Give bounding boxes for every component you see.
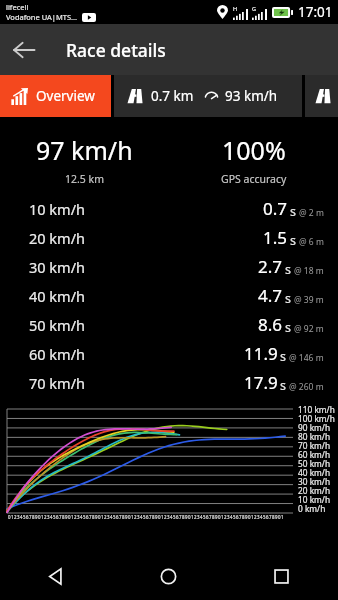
staticText: 3 xyxy=(17,514,20,520)
staticText: 100 km/h xyxy=(298,413,335,422)
staticText: GPS accuracy xyxy=(221,172,287,186)
button[interactable]: Back xyxy=(0,552,112,600)
staticText: 4 xyxy=(110,514,113,520)
staticText: 9 xyxy=(125,514,128,520)
staticText: 9 xyxy=(275,514,278,520)
staticText: 6 xyxy=(236,514,239,520)
staticText: 1 xyxy=(191,514,194,520)
staticText: 9 xyxy=(215,514,218,520)
staticText: 60 km/h xyxy=(29,344,86,364)
button[interactable]: 30 km/h xyxy=(0,252,338,281)
staticText: 3 xyxy=(107,514,110,520)
staticText: 93 km/h xyxy=(225,87,278,105)
staticText: 1 xyxy=(101,514,104,520)
staticText: 60 km/h xyxy=(298,449,331,458)
staticText: 4 xyxy=(200,514,203,520)
button[interactable]: Home xyxy=(112,552,225,600)
staticText: 17:01 xyxy=(298,3,333,21)
staticText: 6 xyxy=(266,514,269,520)
staticText: 4 xyxy=(230,514,233,520)
button[interactable]: 20 km/h xyxy=(0,223,338,252)
staticText: 5 xyxy=(23,514,26,520)
staticText: Vodafone UA|MTS... xyxy=(6,12,78,22)
staticText: 0 km/h xyxy=(298,503,326,512)
staticText: @ 92 m xyxy=(294,323,324,335)
staticText: 1 xyxy=(41,514,44,520)
staticText: 6 xyxy=(86,514,89,520)
staticText: 2 xyxy=(44,514,47,520)
staticText: 0 xyxy=(188,514,191,520)
staticText: 8.6 xyxy=(258,313,283,336)
staticText: 5 xyxy=(203,514,206,520)
staticText: 1 xyxy=(281,514,284,520)
staticText: s xyxy=(290,203,296,220)
staticText: 3 xyxy=(167,514,170,520)
staticText: 17.9 xyxy=(244,371,278,394)
staticText: 2 xyxy=(134,514,137,520)
staticText: 5 xyxy=(173,514,176,520)
staticText: s xyxy=(280,377,286,394)
staticText: 0 xyxy=(68,514,71,520)
staticText: 9 xyxy=(95,514,98,520)
staticText: 4.7 xyxy=(258,284,283,307)
staticText: 10 km/h xyxy=(29,199,86,219)
staticText: 2 xyxy=(14,514,17,520)
staticText: 3 xyxy=(137,514,140,520)
staticText: 1.5 xyxy=(263,226,288,249)
staticText: s xyxy=(285,261,291,278)
staticText: @ 260 m xyxy=(289,381,324,393)
button[interactable]: 0.7 km xyxy=(114,75,302,117)
staticText: 70 km/h xyxy=(298,440,331,449)
staticText: @ 146 m xyxy=(289,352,324,364)
staticText: 5 xyxy=(83,514,86,520)
staticText: 7 xyxy=(119,514,122,520)
button[interactable]: 10 km/h xyxy=(0,194,338,223)
staticText: s xyxy=(290,232,296,249)
staticText: 0 xyxy=(278,514,281,520)
staticText: 8 xyxy=(92,514,95,520)
staticText: Overview xyxy=(36,87,95,105)
staticText: 8 xyxy=(32,514,35,520)
staticText: 4 xyxy=(50,514,53,520)
staticText: 7 xyxy=(149,514,152,520)
staticText: 80 km/h xyxy=(298,431,331,440)
button[interactable]: Overview xyxy=(0,75,111,117)
staticText: 90 km/h xyxy=(298,422,331,431)
staticText: 40 km/h xyxy=(298,467,331,476)
staticText: 1 xyxy=(71,514,74,520)
staticText: @ 6 m xyxy=(299,236,324,248)
staticText: 6 xyxy=(146,514,149,520)
staticText: 3 xyxy=(227,514,230,520)
staticText: @ 2 m xyxy=(299,207,324,219)
staticText: 7 xyxy=(179,514,182,520)
button[interactable]: Recent apps xyxy=(225,552,338,600)
staticText: 3 xyxy=(77,514,80,520)
button[interactable]: 50 km/h xyxy=(0,310,338,339)
staticText: 97 km/h xyxy=(36,133,133,167)
button[interactable]: 40 km/h xyxy=(0,281,338,310)
staticText: 9 xyxy=(245,514,248,520)
staticText: 1 xyxy=(221,514,224,520)
staticText: lifecell xyxy=(6,2,29,12)
staticText: H xyxy=(233,5,238,12)
staticText: 5 xyxy=(233,514,236,520)
staticText: 1 xyxy=(251,514,254,520)
button[interactable]: Back xyxy=(0,26,48,74)
staticText: 7 xyxy=(239,514,242,520)
staticText: 8 xyxy=(242,514,245,520)
staticText: 8 xyxy=(122,514,125,520)
staticText: 30 km/h xyxy=(298,476,331,485)
staticText: 4 xyxy=(170,514,173,520)
staticText: 50 km/h xyxy=(298,458,331,467)
staticText: 12.5 km xyxy=(65,172,104,186)
button[interactable]: 70 km/h xyxy=(0,368,338,397)
staticText: 1 xyxy=(161,514,164,520)
button[interactable]: 60 km/h xyxy=(0,339,338,368)
staticText: 2 xyxy=(74,514,77,520)
button[interactable]: Next lap xyxy=(305,75,338,117)
staticText: 0 xyxy=(248,514,251,520)
staticText: 4 xyxy=(20,514,23,520)
staticText: 0 xyxy=(38,514,41,520)
staticText: 100% xyxy=(222,133,286,167)
staticText: 5 xyxy=(263,514,266,520)
